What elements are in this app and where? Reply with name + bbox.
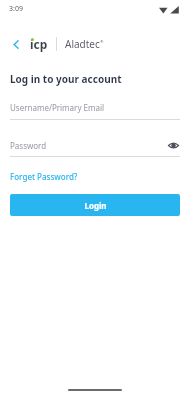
staticText: icp (30, 36, 48, 52)
button[interactable]: Back (6, 34, 26, 54)
staticText: Password (10, 140, 166, 151)
staticText: 3:09 (9, 4, 23, 14)
button[interactable]: Password (10, 138, 180, 157)
staticText: Login (84, 200, 107, 211)
staticText: ® (100, 39, 104, 44)
button[interactable]: Forget Password? (10, 171, 78, 182)
button[interactable]: Username/Primary Email (10, 102, 180, 120)
staticText: Forget Password? (10, 171, 78, 182)
staticText: Aladtec (65, 37, 100, 51)
button[interactable]: Login (10, 194, 180, 216)
staticText: Username/Primary Email (10, 102, 105, 113)
button[interactable]: Show password (166, 138, 180, 152)
staticText: Log in to your account (10, 72, 122, 86)
